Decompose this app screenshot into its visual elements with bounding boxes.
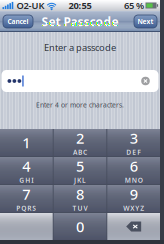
staticText: P Q R S bbox=[16, 204, 36, 213]
staticText: Enter a passcode bbox=[44, 41, 116, 54]
button[interactable]: Next bbox=[134, 15, 157, 28]
button[interactable]: 9 bbox=[107, 185, 160, 212]
staticText: 9 bbox=[130, 184, 138, 204]
staticText: 1 bbox=[22, 133, 30, 152]
staticText: Set Passcode bbox=[41, 13, 118, 29]
staticText: 3 bbox=[130, 128, 138, 148]
staticText: W X Y Z bbox=[123, 204, 144, 213]
button[interactable]: 6 bbox=[107, 157, 160, 184]
staticText: 0 bbox=[76, 217, 84, 236]
button[interactable]: 8 bbox=[54, 185, 106, 212]
button[interactable]: Cancel bbox=[3, 15, 33, 28]
staticText: J K L bbox=[74, 176, 86, 185]
staticText: Cancel bbox=[7, 17, 28, 26]
button[interactable]: 3 bbox=[107, 129, 160, 156]
staticText: A B C bbox=[73, 148, 87, 157]
staticText: 2 bbox=[76, 128, 84, 148]
staticText: D E F bbox=[126, 148, 141, 157]
staticText: O2-UK bbox=[16, 0, 44, 12]
staticText: M N O bbox=[125, 176, 143, 185]
staticText: 20:55 bbox=[68, 0, 91, 12]
staticText: 8 bbox=[76, 184, 84, 204]
button[interactable]: 5 bbox=[54, 157, 106, 184]
button[interactable]: 7 bbox=[0, 185, 53, 212]
button[interactable]: Delete bbox=[107, 213, 160, 240]
staticText: 7 bbox=[22, 184, 30, 204]
staticText: 4 bbox=[22, 156, 30, 176]
staticText: 5 bbox=[76, 156, 84, 176]
button[interactable]: 4 bbox=[0, 157, 53, 184]
button[interactable]: 0 bbox=[54, 213, 106, 240]
staticText: 65 % bbox=[124, 0, 144, 12]
staticText: 6 bbox=[130, 156, 138, 176]
button[interactable]: 2 bbox=[54, 129, 106, 156]
staticText: T U V bbox=[72, 204, 87, 213]
button[interactable]: Clear text bbox=[136, 71, 154, 91]
staticText: Next bbox=[137, 17, 153, 26]
staticText: G H I bbox=[19, 176, 33, 185]
button[interactable]: 1 bbox=[0, 129, 53, 156]
staticText: Enter 4 or more characters. bbox=[36, 101, 124, 109]
